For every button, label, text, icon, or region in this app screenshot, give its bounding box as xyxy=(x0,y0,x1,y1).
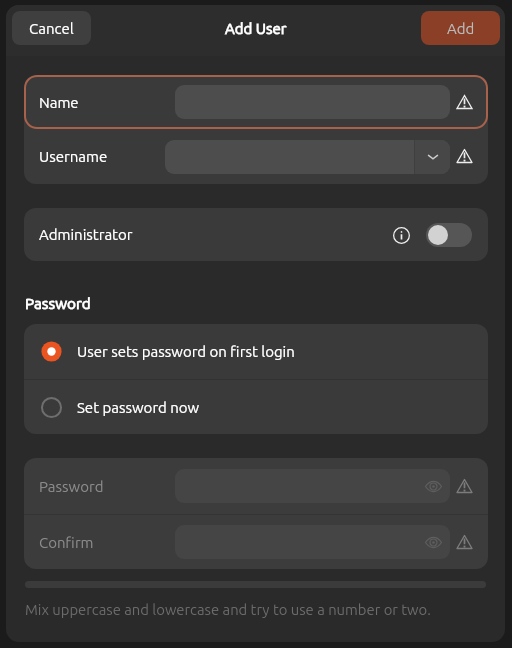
button[interactable]: Username xyxy=(24,129,488,184)
staticText: Cancel xyxy=(29,20,74,37)
button[interactable]: Confirm xyxy=(24,515,488,569)
button[interactable]: Name xyxy=(24,75,488,129)
button[interactable]: Administrator toggle xyxy=(426,223,472,247)
button[interactable]: Password xyxy=(24,458,488,514)
staticText: Add xyxy=(447,20,475,37)
staticText: Username xyxy=(39,148,108,165)
button[interactable]: Choose username xyxy=(415,140,450,174)
staticText: Add User xyxy=(225,20,287,37)
button[interactable]: Add xyxy=(421,11,500,45)
staticText: Password xyxy=(25,295,91,312)
staticText: User sets password on first login xyxy=(77,343,295,360)
button[interactable]: Set password now xyxy=(24,380,488,434)
button[interactable]: Administrator xyxy=(24,208,488,261)
button[interactable]: User sets password on first login xyxy=(24,324,488,379)
staticText: Password xyxy=(39,478,104,495)
button[interactable]: More information xyxy=(389,223,413,247)
staticText: Administrator xyxy=(39,226,133,243)
button[interactable]: Name warning xyxy=(450,75,478,129)
staticText: Set password now xyxy=(77,399,200,416)
staticText: Name xyxy=(39,94,79,111)
button[interactable]: Cancel xyxy=(12,11,91,45)
staticText: Mix uppercase and lowercase and try to u… xyxy=(25,601,431,618)
button[interactable]: Show password xyxy=(416,469,450,503)
button[interactable]: Show password xyxy=(416,525,450,559)
staticText: Confirm xyxy=(39,534,94,551)
button[interactable]: Username warning xyxy=(450,129,478,184)
